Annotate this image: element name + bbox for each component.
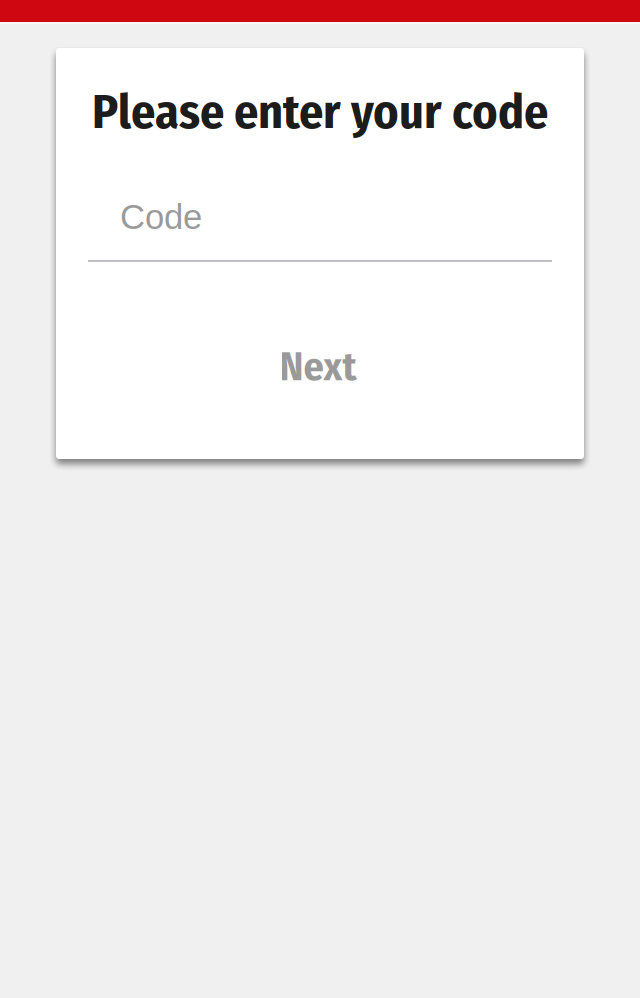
- button[interactable]: Code: [56, 141, 584, 262]
- button[interactable]: Next: [56, 317, 584, 417]
- staticText: Next: [279, 343, 356, 391]
- staticText: Code: [120, 198, 202, 236]
- staticText: Please enter your code: [92, 83, 548, 141]
